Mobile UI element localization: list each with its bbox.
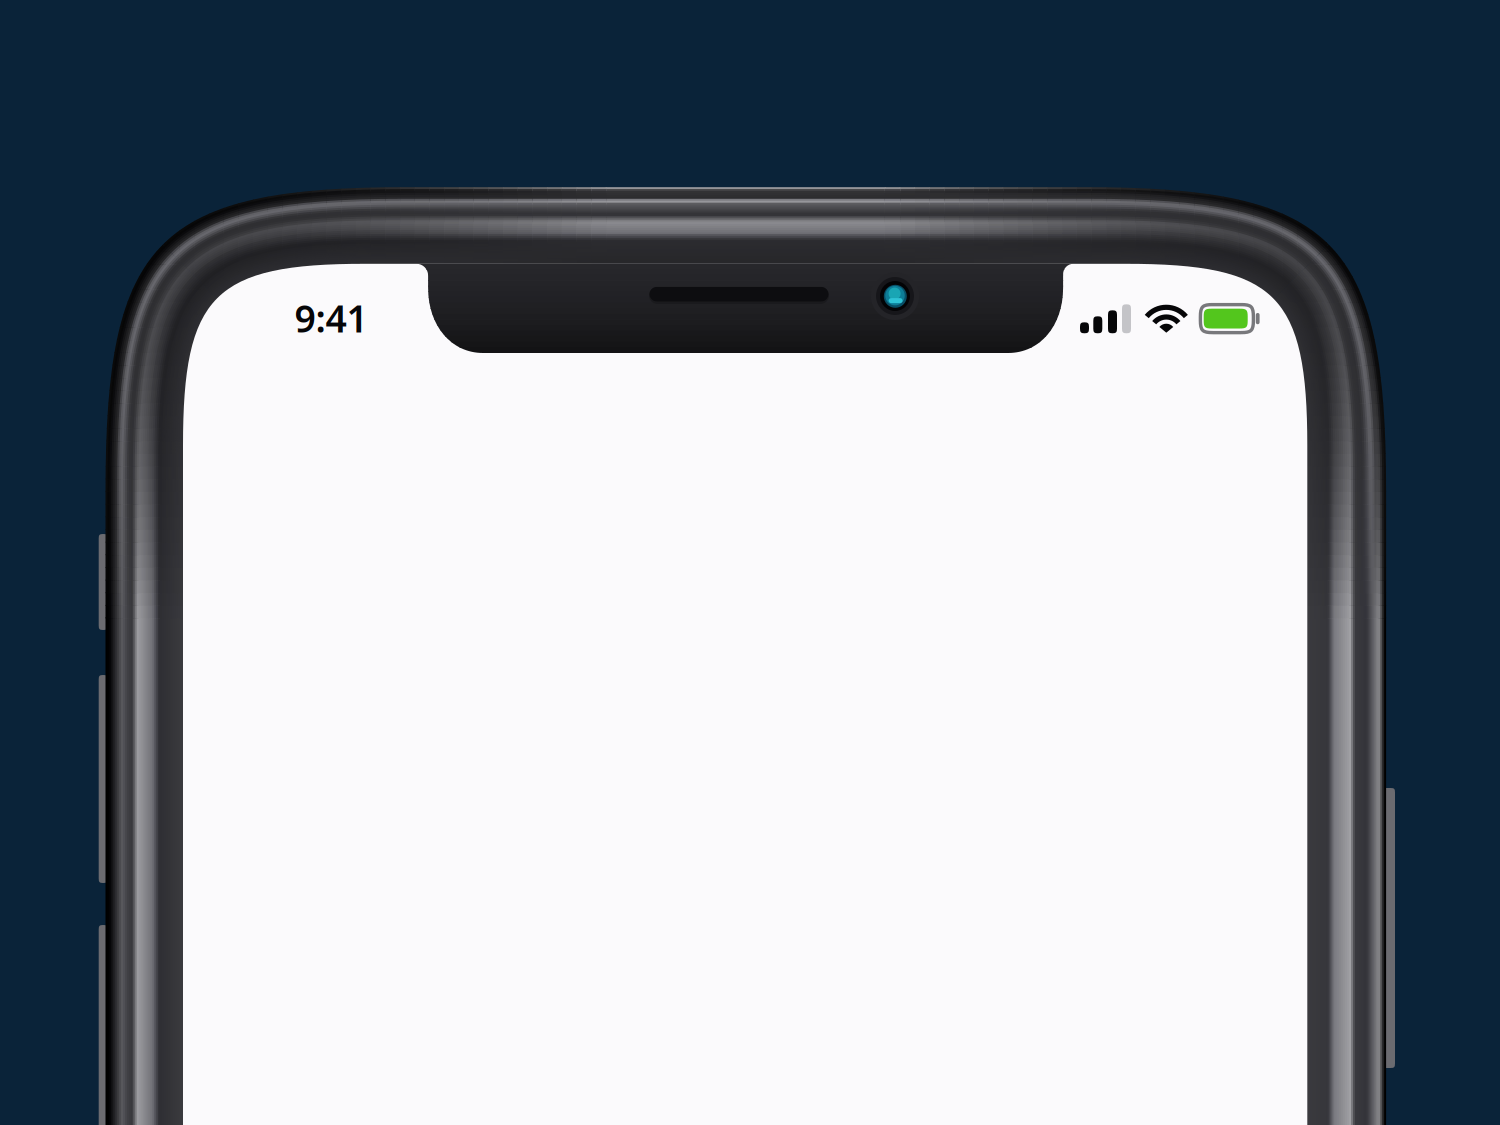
staticText: 9:41 xyxy=(294,293,367,343)
